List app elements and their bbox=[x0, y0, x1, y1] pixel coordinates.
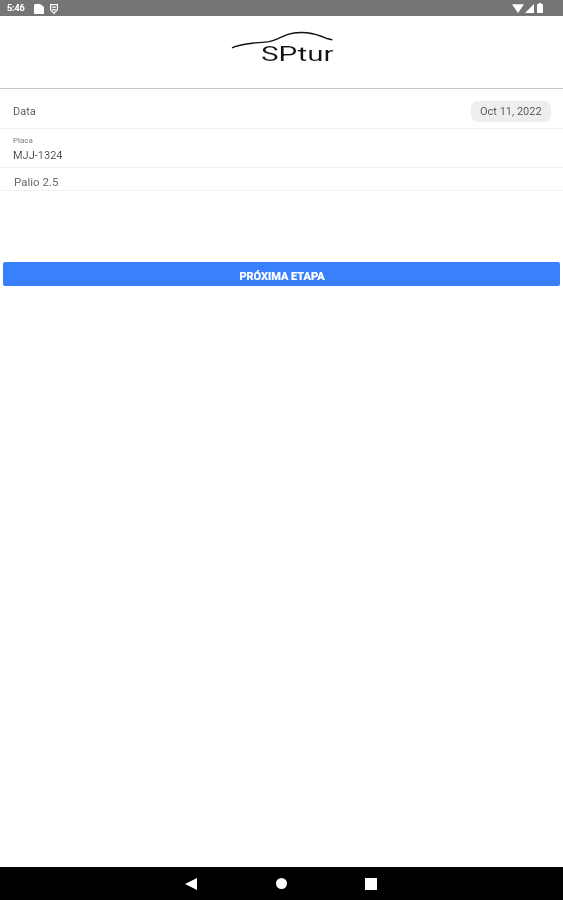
staticText: Oct 11, 2022 bbox=[480, 105, 542, 118]
staticText: PRÓXIMA ETAPA bbox=[239, 270, 325, 283]
button[interactable]: Palio 2.5 bbox=[0, 168, 563, 190]
staticText: Placa bbox=[13, 136, 33, 145]
staticText: MJJ-1324 bbox=[13, 149, 63, 162]
button[interactable]: PRÓXIMA ETAPA bbox=[3, 262, 560, 286]
button[interactable]: Home bbox=[251, 867, 311, 900]
button[interactable]: Recent apps bbox=[341, 867, 401, 900]
staticText: 5:46 bbox=[7, 3, 25, 14]
staticText: Data bbox=[13, 105, 36, 118]
button[interactable]: Oct 11, 2022 bbox=[471, 101, 551, 122]
button[interactable]: Placa bbox=[0, 129, 563, 167]
button[interactable]: Back bbox=[161, 867, 221, 900]
button[interactable]: Data bbox=[0, 89, 563, 128]
staticText: Palio 2.5 bbox=[14, 175, 59, 188]
staticText: SPtur bbox=[261, 42, 333, 65]
